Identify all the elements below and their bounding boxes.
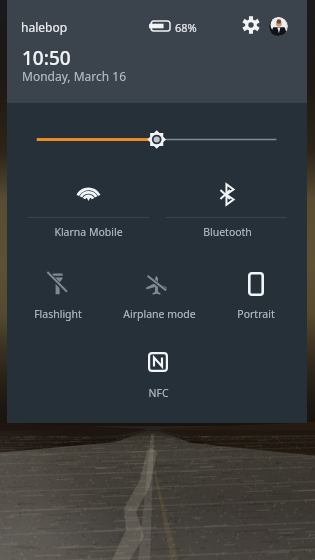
staticText: Monday, March 16	[22, 68, 127, 84]
staticText: Bluetooth	[203, 225, 252, 239]
staticText: Flashlight	[34, 307, 82, 321]
staticText: Portrait	[237, 307, 275, 321]
staticText: Airplane mode	[123, 307, 196, 321]
button[interactable]: User profile	[269, 17, 288, 36]
staticText: NFC	[148, 386, 169, 400]
button[interactable]	[126, 340, 190, 384]
staticText: 68%	[175, 20, 197, 35]
staticText: halebop	[21, 19, 68, 35]
button[interactable]	[124, 263, 188, 307]
button[interactable]: Settings	[235, 9, 267, 41]
button[interactable]	[56, 169, 120, 213]
button[interactable]	[195, 172, 259, 216]
staticText: Klarna Mobile	[54, 225, 123, 239]
button[interactable]	[224, 262, 288, 306]
staticText: 10:50	[22, 45, 71, 71]
button[interactable]	[25, 261, 89, 305]
